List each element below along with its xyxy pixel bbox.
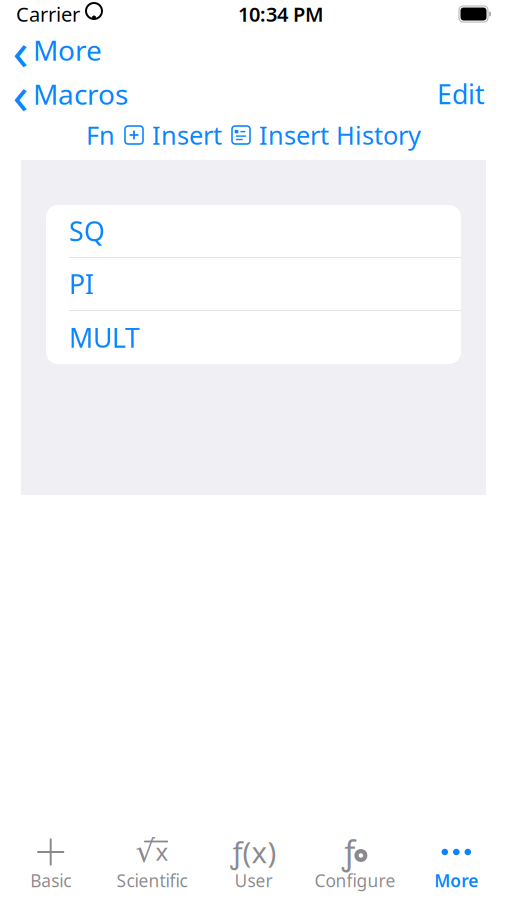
staticText: Configure bbox=[314, 869, 395, 892]
staticText: ƒ(x) bbox=[230, 832, 276, 871]
button[interactable]: Basic bbox=[0, 834, 101, 896]
staticText: Fn bbox=[86, 118, 115, 152]
staticText: 10:34 PM bbox=[238, 1, 324, 27]
staticText: PI bbox=[69, 266, 94, 302]
staticText: Scientific bbox=[117, 869, 188, 892]
button[interactable]: SQ bbox=[46, 205, 461, 258]
staticText: MULT bbox=[69, 320, 140, 355]
button[interactable]: Edit bbox=[437, 70, 507, 118]
staticText: Edit bbox=[437, 76, 485, 112]
button[interactable]: More bbox=[406, 834, 507, 896]
staticText: Macros bbox=[33, 75, 128, 113]
button[interactable]: ƒ bbox=[304, 834, 406, 896]
staticText: √ bbox=[136, 834, 156, 869]
staticText: SQ bbox=[69, 213, 105, 249]
button[interactable]: MULT bbox=[46, 311, 461, 364]
button[interactable]: Fn bbox=[86, 114, 115, 156]
staticText: ‹ bbox=[12, 59, 28, 129]
button[interactable]: Insert History bbox=[231, 114, 421, 156]
staticText: ƒ bbox=[342, 831, 355, 873]
button[interactable]: ‹ bbox=[0, 25, 102, 75]
staticText: Insert History bbox=[259, 118, 421, 152]
staticText: More bbox=[434, 869, 478, 892]
button[interactable]: √ bbox=[101, 834, 203, 896]
staticText: User bbox=[234, 869, 272, 892]
staticText: Insert bbox=[152, 118, 222, 152]
staticText: x bbox=[156, 835, 169, 867]
staticText: More bbox=[33, 31, 102, 69]
staticText: Basic bbox=[30, 869, 71, 892]
staticText: ‹ bbox=[12, 15, 28, 85]
button[interactable]: Insert bbox=[124, 114, 222, 156]
button[interactable]: ‹ bbox=[0, 69, 128, 119]
button[interactable]: PI bbox=[46, 258, 461, 311]
staticText: Carrier bbox=[16, 1, 80, 27]
button[interactable]: ƒ(x) bbox=[203, 834, 304, 896]
